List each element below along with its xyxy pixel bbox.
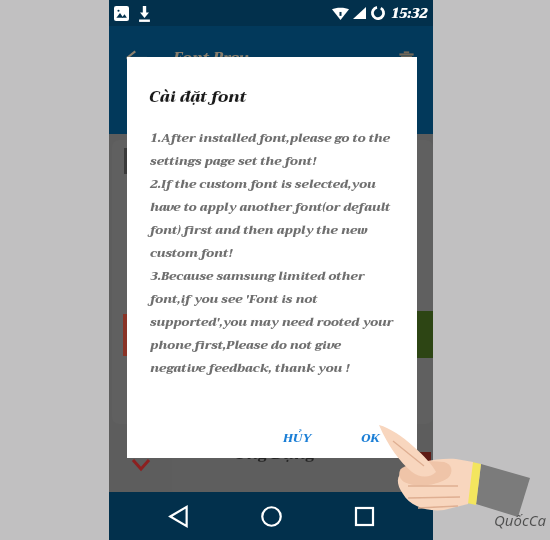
staticText: HỦY: [283, 428, 312, 449]
staticText: Cài đặt font: [149, 83, 247, 111]
staticText: Font Prev: [173, 45, 248, 71]
staticText: 15:32: [391, 2, 428, 25]
button[interactable]: [172, 452, 430, 497]
staticText: OK: [361, 428, 381, 449]
button[interactable]: Home: [248, 493, 294, 539]
button[interactable]: Back: [156, 493, 202, 539]
button[interactable]: Delete: [393, 45, 419, 71]
staticText: QuốcCa: [494, 510, 547, 530]
button[interactable]: Recent apps: [341, 493, 387, 539]
button[interactable]: [112, 140, 433, 424]
button[interactable]: OK: [351, 419, 391, 458]
staticText: Ứng Dụng: [234, 440, 316, 468]
button[interactable]: HỦY: [273, 419, 322, 458]
button[interactable]: Back: [123, 44, 151, 72]
staticText: 1.After installed font,please go to the …: [150, 127, 412, 379]
